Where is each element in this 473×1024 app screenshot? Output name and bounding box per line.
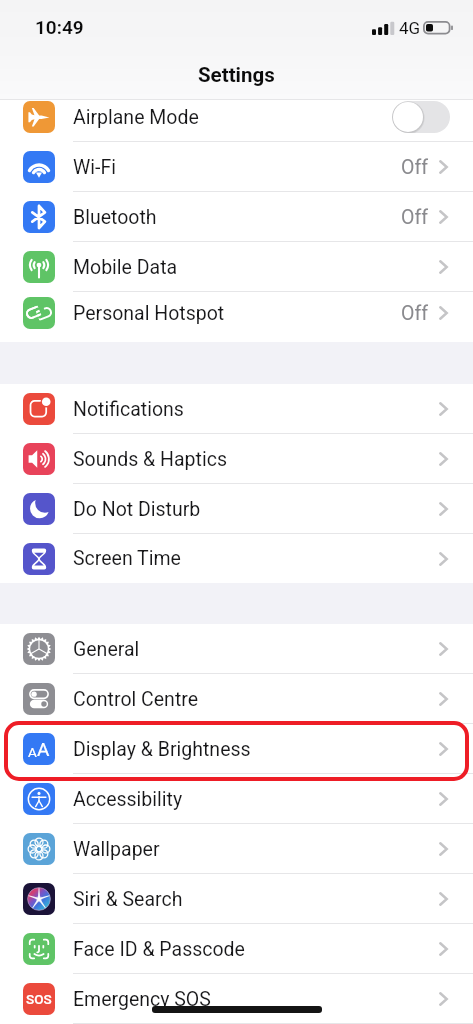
staticText: Wi-Fi [73, 156, 116, 179]
staticText: Notifications [73, 398, 184, 421]
button[interactable]: General [0, 624, 473, 674]
button[interactable]: Sounds & Haptics [0, 434, 473, 484]
staticText: 10:49 [35, 16, 84, 38]
staticText: Control Centre [73, 688, 199, 711]
button[interactable]: Mobile Data [0, 242, 473, 292]
staticText: 4G [399, 18, 421, 38]
button[interactable]: Personal Hotspot [0, 292, 473, 334]
button[interactable]: Accessibility [0, 774, 473, 824]
staticText: Off [401, 206, 428, 229]
button[interactable]: Wallpaper [0, 824, 473, 874]
staticText: Personal Hotspot [73, 302, 225, 325]
staticText: SOS [26, 991, 52, 1007]
button[interactable]: Face ID & Passcode [0, 924, 473, 974]
staticText: Screen Time [73, 547, 181, 570]
staticText: A [28, 744, 37, 760]
button[interactable]: A [0, 724, 473, 774]
staticText: Off [401, 156, 428, 179]
button[interactable]: Screen Time [0, 534, 473, 583]
staticText: Sounds & Haptics [73, 448, 227, 471]
button[interactable]: Wi-Fi [0, 142, 473, 192]
staticText: Display & Brightness [73, 738, 251, 761]
staticText: Wallpaper [73, 838, 160, 861]
staticText: Airplane Mode [73, 106, 199, 129]
button[interactable]: Airplane Mode toggle [392, 101, 450, 133]
staticText: Mobile Data [73, 256, 178, 279]
button[interactable]: Airplane Mode [0, 100, 473, 142]
staticText: Emergency SOS [73, 988, 211, 1011]
staticText: Off [401, 302, 428, 325]
staticText: A [37, 738, 50, 760]
button[interactable]: Siri & Search [0, 874, 473, 924]
staticText: Bluetooth [73, 206, 157, 229]
button[interactable]: Notifications [0, 384, 473, 434]
staticText: Do Not Disturb [73, 498, 201, 521]
button[interactable]: Control Centre [0, 674, 473, 724]
button[interactable]: Bluetooth [0, 192, 473, 242]
staticText: Settings [198, 63, 275, 87]
staticText: Face ID & Passcode [73, 938, 245, 961]
staticText: General [73, 638, 140, 661]
button[interactable]: SOS [0, 974, 473, 1024]
staticText: Siri & Search [73, 888, 183, 911]
button[interactable]: Do Not Disturb [0, 484, 473, 534]
staticText: Accessibility [73, 788, 183, 811]
